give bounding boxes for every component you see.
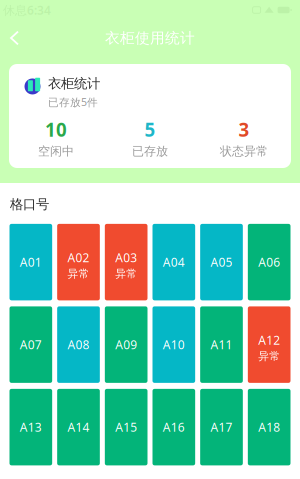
staticText: 衣柜统计 bbox=[48, 75, 100, 92]
staticText: A18 bbox=[258, 419, 280, 435]
staticText: 异常 bbox=[258, 349, 280, 363]
button[interactable]: A11 bbox=[200, 306, 243, 383]
staticText: 已存放 bbox=[132, 144, 168, 158]
button[interactable]: A13 bbox=[9, 389, 52, 465]
staticText: A09 bbox=[115, 337, 137, 353]
button[interactable]: A17 bbox=[200, 389, 243, 465]
staticText: A04 bbox=[163, 254, 185, 270]
staticText: 状态异常 bbox=[220, 144, 268, 158]
button[interactable]: Back bbox=[0, 20, 29, 56]
staticText: 已存放5件 bbox=[48, 95, 98, 109]
staticText: 休息6:34 bbox=[3, 2, 51, 18]
staticText: A16 bbox=[163, 419, 185, 435]
staticText: A10 bbox=[163, 337, 185, 353]
staticText: A12 bbox=[258, 332, 280, 348]
button[interactable]: A07 bbox=[9, 306, 52, 383]
staticText: A01 bbox=[20, 254, 42, 270]
staticText: 异常 bbox=[67, 267, 89, 280]
staticText: A11 bbox=[210, 337, 232, 353]
staticText: A13 bbox=[20, 419, 42, 435]
staticText: 格口号 bbox=[10, 196, 49, 212]
button[interactable]: A03 bbox=[105, 224, 147, 300]
button[interactable]: A15 bbox=[105, 389, 147, 465]
button[interactable]: A14 bbox=[57, 389, 100, 465]
button[interactable]: A02 bbox=[57, 224, 100, 300]
staticText: A05 bbox=[210, 254, 232, 270]
button[interactable]: A01 bbox=[9, 224, 52, 300]
staticText: A02 bbox=[67, 250, 89, 265]
button[interactable]: A04 bbox=[152, 224, 195, 300]
staticText: A06 bbox=[258, 254, 280, 270]
button[interactable]: A12 bbox=[248, 306, 290, 383]
button[interactable]: A08 bbox=[57, 306, 100, 383]
staticText: A08 bbox=[67, 337, 89, 353]
button[interactable]: A18 bbox=[248, 389, 290, 465]
staticText: 空闲中 bbox=[38, 144, 74, 158]
button[interactable]: A16 bbox=[152, 389, 195, 465]
button[interactable]: A05 bbox=[200, 224, 243, 300]
staticText: A03 bbox=[115, 250, 137, 265]
staticText: 5 bbox=[144, 117, 155, 142]
staticText: 10 bbox=[45, 117, 67, 142]
staticText: 衣柜使用统计 bbox=[105, 29, 195, 47]
staticText: 异常 bbox=[115, 267, 137, 280]
staticText: A15 bbox=[115, 419, 137, 435]
button[interactable]: A09 bbox=[105, 306, 147, 383]
staticText: A07 bbox=[20, 337, 42, 353]
staticText: A14 bbox=[67, 419, 89, 435]
staticText: 3 bbox=[238, 117, 249, 142]
button[interactable]: A06 bbox=[248, 224, 290, 300]
button[interactable]: A10 bbox=[152, 306, 195, 383]
staticText: A17 bbox=[210, 419, 232, 435]
